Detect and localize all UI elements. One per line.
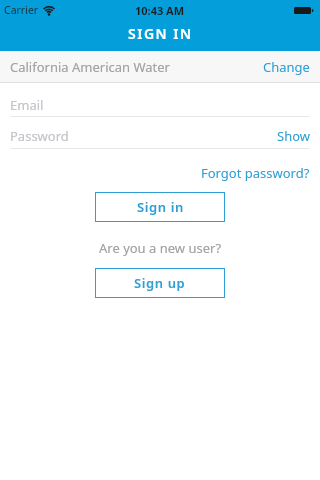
staticText: Sign up <box>134 274 186 292</box>
button[interactable]: Sign in <box>95 192 225 222</box>
button[interactable]: Sign up <box>95 268 225 298</box>
staticText: Password <box>10 127 69 145</box>
staticText: 10:43 AM <box>135 3 185 18</box>
button[interactable]: Forgot password? <box>201 164 310 182</box>
staticText: Carrier <box>4 3 39 17</box>
staticText: SIGN IN <box>128 24 193 43</box>
staticText: Email <box>10 96 44 114</box>
button[interactable]: Email <box>0 83 320 117</box>
button[interactable]: Password <box>0 117 320 149</box>
staticText: Change <box>263 58 310 76</box>
staticText: Show <box>277 127 310 145</box>
staticText: Sign in <box>137 198 184 216</box>
staticText: Are you a new user? <box>99 239 222 257</box>
staticText: California American Water <box>10 58 170 76</box>
button[interactable]: California American Water <box>0 51 320 82</box>
